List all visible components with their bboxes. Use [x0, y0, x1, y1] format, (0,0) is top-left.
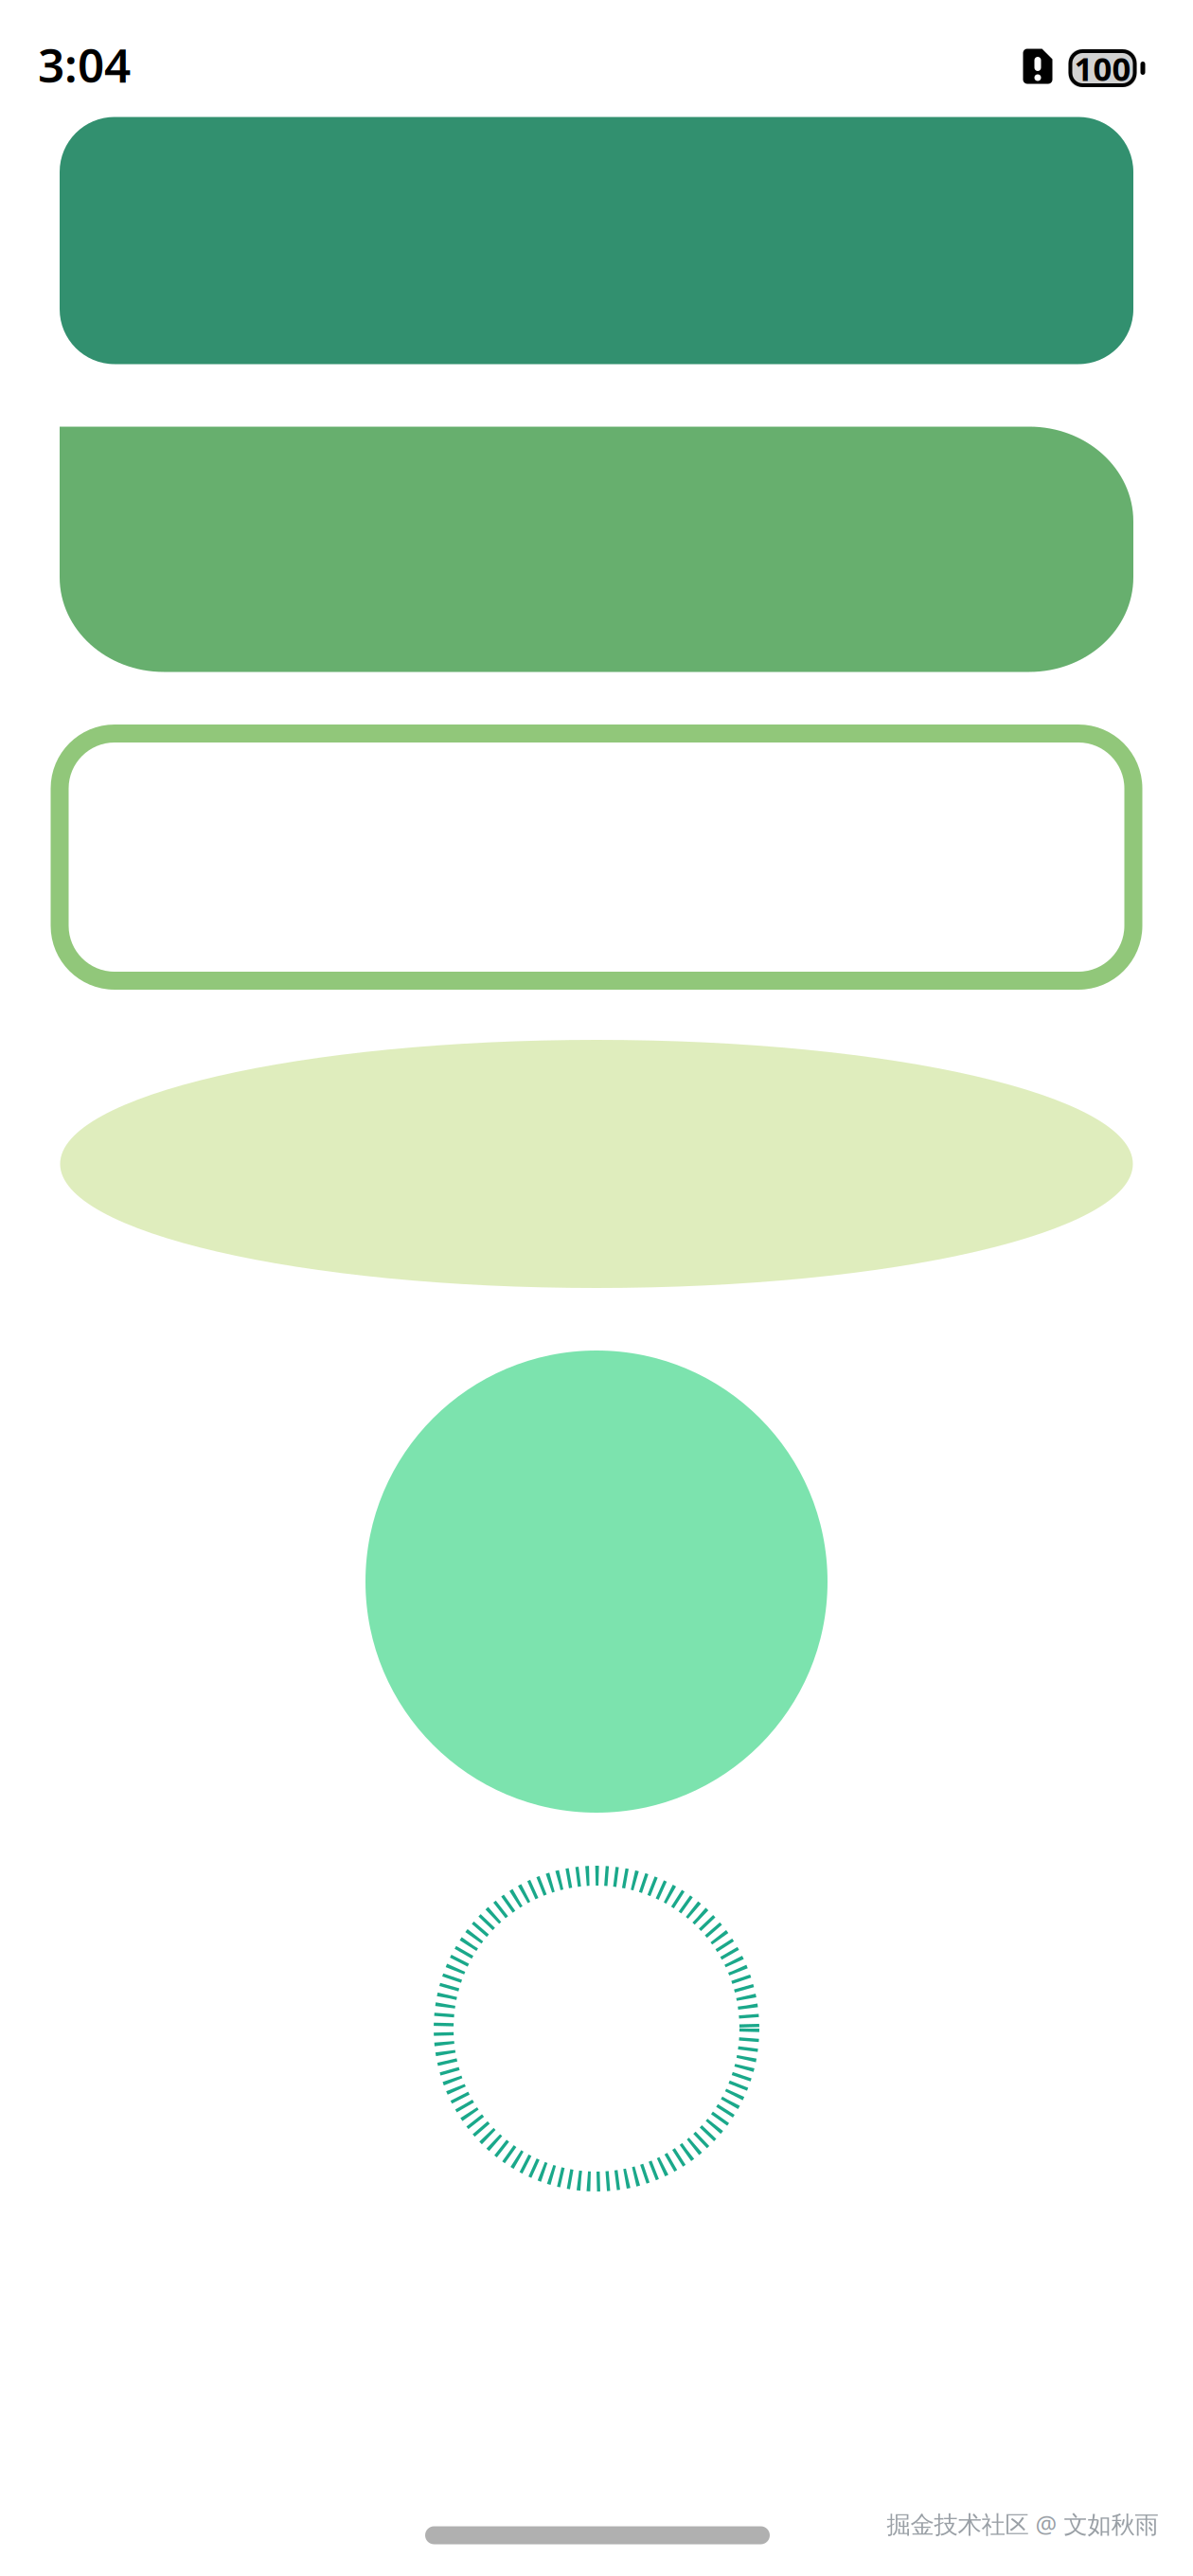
staticText: 100 — [1074, 46, 1131, 90]
staticText: 3:04 — [38, 33, 131, 95]
staticText: 掘金技术社区 @ 文如秋雨 — [887, 2508, 1158, 2540]
